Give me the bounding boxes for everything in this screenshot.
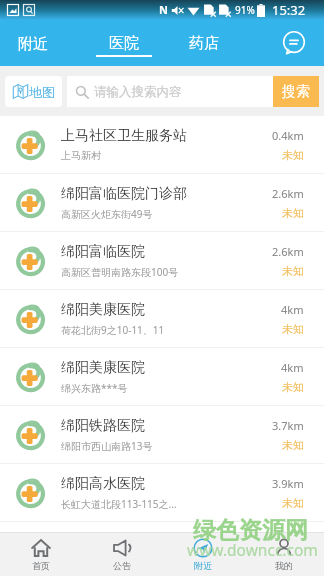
staticText: 未知 (282, 380, 304, 394)
staticText: 公告 (113, 560, 131, 571)
button[interactable]: 绵阳富临医院门诊部 (0, 174, 324, 232)
staticText: www.downcc.com (187, 539, 318, 560)
staticText: 绵阳美康医院 (61, 359, 145, 377)
button[interactable]: 搜索 (273, 76, 319, 107)
staticText: 搜索 (282, 83, 310, 101)
staticText: 未知 (282, 496, 304, 510)
button[interactable]: 绵阳美康医院 (0, 348, 324, 406)
button[interactable]: 地图 (5, 76, 62, 107)
button[interactable]: Messages (282, 31, 306, 55)
button[interactable]: 药店 (184, 20, 224, 66)
staticText: N (159, 2, 168, 17)
staticText: 绵阳高水医院 (61, 475, 145, 493)
staticText: 我的 (275, 560, 293, 571)
staticText: 未知 (282, 148, 304, 162)
button[interactable]: 绵阳铁路医院 (0, 406, 324, 464)
button[interactable]: 请输入搜索内容 (67, 76, 273, 107)
staticText: 绵阳美康医院 (61, 301, 145, 319)
staticText: 上马社区卫生服务站 (61, 127, 187, 145)
staticText: 医院 (109, 34, 139, 53)
staticText: 荷花北街9之10-11、11 (61, 323, 165, 337)
button[interactable]: 绵阳富临医院 (0, 232, 324, 290)
staticText: 3.9km (272, 476, 304, 491)
staticText: 绵阳富临医院门诊部 (61, 185, 187, 203)
staticText: 未知 (282, 322, 304, 336)
staticText: 2.6km (272, 244, 304, 259)
button[interactable]: 上马社区卫生服务站 (0, 116, 324, 174)
staticText: 0.4km (272, 128, 304, 143)
button[interactable]: 绵阳高水医院 (0, 464, 324, 522)
button[interactable]: 医院 (96, 20, 152, 66)
staticText: 高新区火炬东街49号 (61, 207, 153, 221)
staticText: 绵阳市西山南路13号 (61, 439, 153, 453)
staticText: 上马新村 (61, 149, 101, 162)
staticText: 长虹大道北段113-115之... (61, 497, 177, 511)
button[interactable]: 公告 (81, 533, 162, 576)
staticText: 15:32 (272, 1, 306, 19)
staticText: 请输入搜索内容 (94, 84, 182, 100)
staticText: 未知 (282, 438, 304, 452)
button[interactable]: 附近 (10, 20, 56, 66)
button[interactable]: 绵阳美康医院 (0, 290, 324, 348)
staticText: 2.6km (272, 186, 304, 201)
staticText: 附近 (18, 35, 48, 54)
staticText: 4km (281, 302, 304, 317)
staticText: 未知 (282, 206, 304, 220)
button[interactable]: 附近 (162, 533, 243, 576)
button[interactable]: 我的 (243, 533, 324, 576)
staticText: 91% (235, 3, 255, 17)
staticText: 3.7km (272, 418, 304, 433)
staticText: 未知 (282, 264, 304, 278)
staticText: 绵阳富临医院 (61, 243, 145, 261)
staticText: 首页 (32, 560, 50, 571)
staticText: 绿色资源网 (193, 516, 308, 545)
staticText: 绵阳铁路医院 (61, 417, 145, 435)
staticText: 地图 (29, 84, 55, 100)
staticText: 高新区普明南路东段100号 (61, 265, 179, 279)
staticText: 附近 (194, 560, 212, 571)
staticText: 药店 (189, 34, 219, 53)
staticText: 绵兴东路***号 (61, 381, 128, 395)
button[interactable]: 首页 (0, 533, 81, 576)
staticText: 4km (281, 360, 304, 375)
